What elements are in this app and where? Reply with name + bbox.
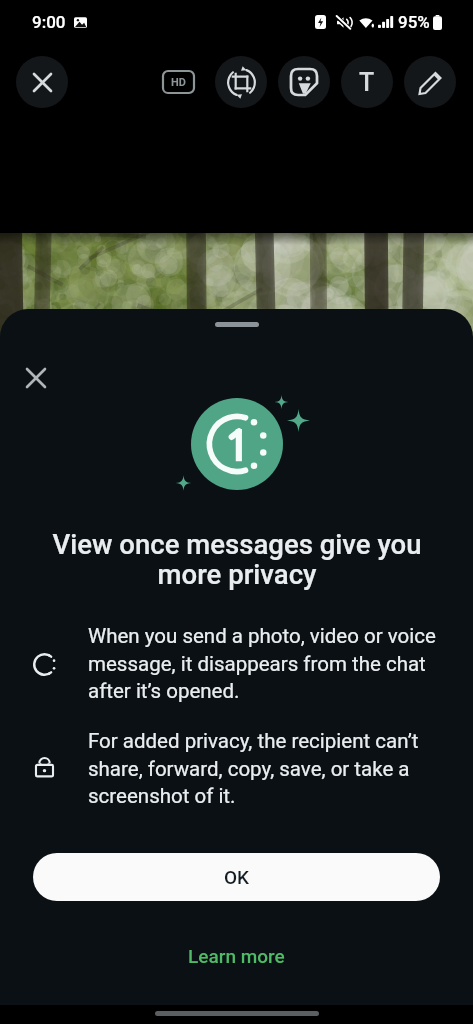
- button[interactable]: Learn more: [0, 936, 473, 976]
- button[interactable]: Close: [16, 56, 68, 108]
- staticText: 9:00: [32, 12, 66, 32]
- staticText: For added privacy, the recipient can’t s…: [88, 729, 442, 808]
- button[interactable]: Draw: [404, 56, 456, 108]
- button[interactable]: Stickers: [278, 56, 330, 108]
- staticText: T: [359, 68, 375, 97]
- button[interactable]: OK: [33, 853, 440, 901]
- button[interactable]: Close: [16, 358, 56, 398]
- staticText: HD: [171, 76, 186, 89]
- button[interactable]: Add text: [341, 56, 393, 108]
- button[interactable]: Crop and rotate: [215, 56, 267, 108]
- staticText: 95%: [398, 12, 430, 32]
- staticText: When you send a photo, video or voice me…: [88, 624, 442, 703]
- staticText: Learn more: [188, 945, 285, 967]
- staticText: OK: [224, 866, 250, 888]
- staticText: View once messages give you more privacy: [46, 528, 428, 591]
- button[interactable]: HD quality: [152, 56, 204, 108]
